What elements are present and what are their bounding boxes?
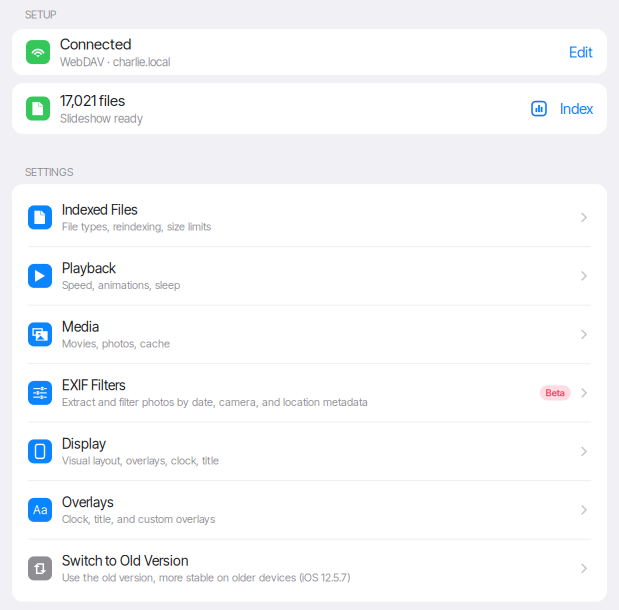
button[interactable]: EXIF Filters (12, 364, 607, 422)
button[interactable]: Connected (12, 29, 607, 75)
staticText: WebDAV · charlie.local (60, 55, 170, 69)
button[interactable]: Media (12, 306, 607, 363)
staticText: Slideshow ready (60, 111, 143, 125)
staticText: Switch to Old Version (62, 552, 188, 569)
button[interactable]: Switch to Old Version (12, 540, 607, 597)
button[interactable]: Display (12, 423, 607, 480)
button[interactable]: Aa (12, 481, 607, 539)
button[interactable]: Indexed Files (12, 189, 607, 246)
staticText: SETTINGS (25, 166, 73, 179)
staticText: Beta (546, 387, 565, 398)
staticText: Connected (60, 35, 131, 53)
staticText: Overlays (62, 494, 114, 511)
staticText: EXIF Filters (62, 377, 126, 394)
staticText: Movies, photos, cache (62, 337, 170, 350)
staticText: Edit (569, 43, 593, 61)
staticText: SETUP (25, 8, 56, 21)
staticText: Clock, title, and custom overlays (62, 513, 215, 526)
staticText: Index (560, 100, 593, 117)
staticText: Indexed Files (62, 201, 138, 218)
staticText: Use the old version, more stable on olde… (62, 571, 350, 584)
staticText: Display (62, 435, 106, 452)
staticText: Visual layout, overlays, clock, title (62, 454, 219, 467)
staticText: 17,021 files (60, 92, 125, 109)
staticText: Playback (62, 260, 116, 277)
button[interactable]: Playback (12, 247, 607, 305)
staticText: Media (62, 318, 99, 335)
staticText: Extract and filter photos by date, camer… (62, 396, 368, 409)
staticText: File types, reindexing, size limits (62, 220, 211, 233)
staticText: Speed, animations, sleep (62, 279, 180, 292)
button[interactable]: 17,021 files (12, 83, 607, 134)
staticText: Aa (33, 503, 47, 517)
